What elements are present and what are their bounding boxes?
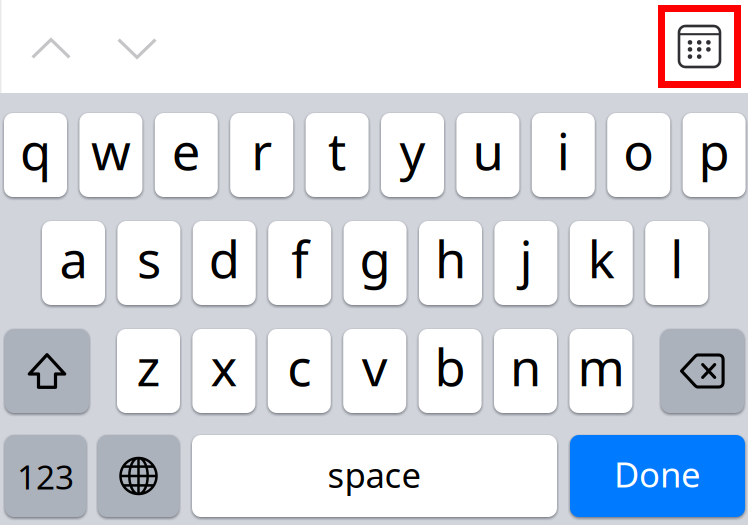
staticText: c bbox=[287, 333, 311, 400]
staticText: k bbox=[588, 225, 615, 292]
button[interactable]: Next keyboard bbox=[98, 435, 179, 517]
button[interactable]: Done bbox=[570, 435, 745, 517]
staticText: f bbox=[291, 225, 308, 292]
staticText: j bbox=[519, 225, 532, 292]
staticText: m bbox=[577, 333, 624, 400]
button[interactable]: c bbox=[268, 329, 331, 413]
staticText: x bbox=[210, 333, 237, 400]
button[interactable]: u bbox=[456, 113, 519, 197]
button[interactable]: Next field bbox=[93, 2, 181, 95]
button[interactable]: Calendar bbox=[658, 5, 741, 88]
button[interactable]: Delete bbox=[661, 329, 744, 413]
button[interactable]: z bbox=[117, 329, 180, 413]
staticText: y bbox=[399, 117, 425, 184]
button[interactable]: s bbox=[117, 221, 180, 305]
button[interactable]: r bbox=[230, 113, 293, 197]
button[interactable]: o bbox=[607, 113, 670, 197]
button[interactable]: k bbox=[570, 221, 633, 305]
staticText: r bbox=[251, 117, 272, 184]
button[interactable]: g bbox=[344, 221, 407, 305]
button[interactable]: v bbox=[343, 329, 406, 413]
staticText: e bbox=[172, 117, 201, 184]
button[interactable]: Shift bbox=[5, 329, 89, 413]
button[interactable]: a bbox=[42, 221, 105, 305]
staticText: o bbox=[623, 117, 654, 184]
button[interactable]: n bbox=[494, 329, 557, 413]
staticText: b bbox=[435, 333, 466, 400]
button[interactable]: l bbox=[645, 221, 708, 305]
staticText: w bbox=[91, 117, 131, 184]
staticText: h bbox=[435, 225, 466, 292]
button[interactable]: q bbox=[4, 113, 67, 197]
staticText: 123 bbox=[17, 454, 74, 499]
button[interactable]: e bbox=[155, 113, 218, 197]
button[interactable]: p bbox=[683, 113, 746, 197]
button[interactable]: j bbox=[494, 221, 557, 305]
staticText: u bbox=[472, 117, 503, 184]
staticText: s bbox=[137, 225, 161, 292]
button[interactable]: i bbox=[532, 113, 595, 197]
staticText: Done bbox=[614, 451, 701, 497]
staticText: p bbox=[699, 117, 730, 184]
staticText: d bbox=[209, 225, 240, 292]
staticText: g bbox=[360, 225, 391, 292]
button[interactable]: d bbox=[193, 221, 256, 305]
staticText: q bbox=[20, 117, 51, 184]
button[interactable]: b bbox=[419, 329, 482, 413]
button[interactable]: m bbox=[569, 329, 632, 413]
staticText: space bbox=[327, 451, 421, 497]
staticText: l bbox=[670, 225, 683, 292]
staticText: z bbox=[136, 333, 160, 400]
button[interactable]: w bbox=[79, 113, 142, 197]
button[interactable]: Previous field bbox=[7, 2, 95, 95]
staticText: n bbox=[510, 333, 541, 400]
button[interactable]: 123 bbox=[5, 435, 86, 517]
staticText: t bbox=[328, 117, 346, 184]
button[interactable]: f bbox=[268, 221, 331, 305]
staticText: v bbox=[362, 333, 388, 400]
button[interactable]: y bbox=[381, 113, 444, 197]
button[interactable]: space bbox=[192, 435, 557, 517]
button[interactable]: t bbox=[306, 113, 369, 197]
staticText: i bbox=[557, 117, 570, 184]
button[interactable]: x bbox=[192, 329, 255, 413]
button[interactable]: h bbox=[419, 221, 482, 305]
staticText: a bbox=[59, 225, 87, 292]
